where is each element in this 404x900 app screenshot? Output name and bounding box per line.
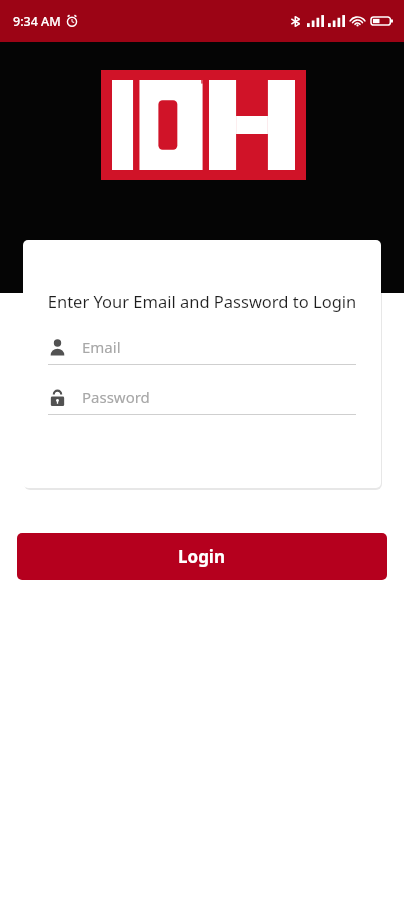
staticText: Password bbox=[82, 387, 150, 407]
staticText: Login bbox=[178, 545, 226, 568]
button[interactable]: Email bbox=[48, 337, 356, 365]
button[interactable]: Password bbox=[48, 387, 356, 415]
staticText: 9:34 AM bbox=[13, 13, 61, 30]
staticText: Enter Your Email and Password to Login bbox=[45, 290, 359, 312]
button[interactable]: Login bbox=[17, 533, 387, 580]
staticText: Email bbox=[82, 337, 121, 357]
other: Password bbox=[48, 388, 67, 407]
other: Email bbox=[48, 338, 67, 357]
